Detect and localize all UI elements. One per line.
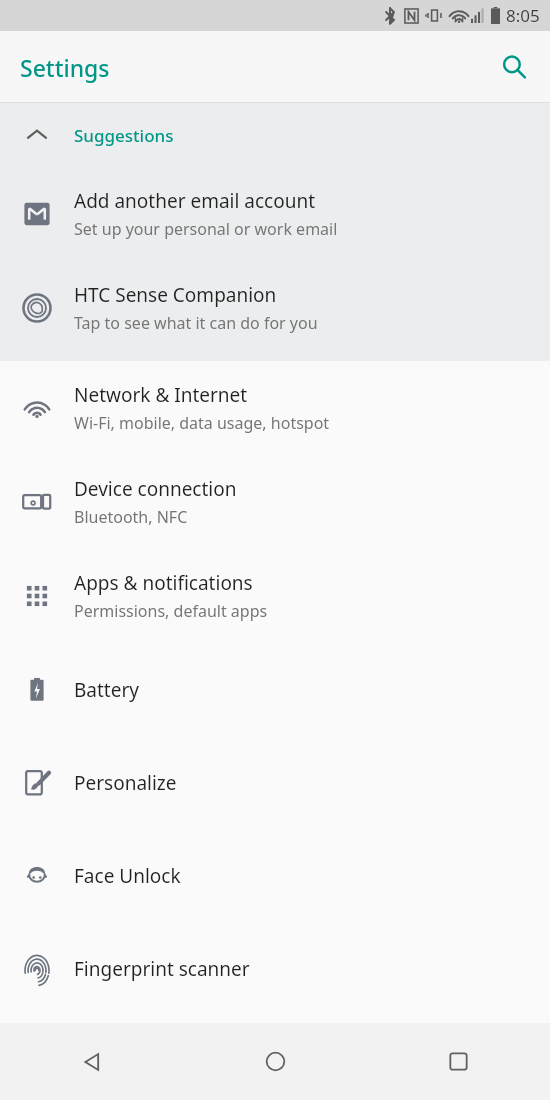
staticText: Apps & notifications [74,570,253,596]
staticText: Battery [74,677,139,703]
staticText: Network & Internet [74,382,248,408]
button[interactable]: Suggestions [0,103,550,167]
button[interactable]: Network & Internet [0,361,550,455]
staticText: Settings [20,52,110,83]
staticText: Personalize [74,770,177,796]
button[interactable]: Add another email account [0,167,550,261]
staticText: Device connection [74,476,237,502]
staticText: 8:05 [506,4,540,27]
button[interactable]: Face Unlock [0,829,550,922]
staticText: HTC Sense Companion [74,282,277,308]
button[interactable]: Home [184,1023,367,1100]
staticText: Bluetooth, NFC [74,506,188,528]
button[interactable]: HTC Sense Companion [0,261,550,355]
button[interactable]: Apps & notifications [0,549,550,643]
staticText: Face Unlock [74,863,181,889]
staticText: Permissions, default apps [74,600,268,622]
button[interactable]: Back [0,1023,184,1100]
button[interactable]: Personalize [0,736,550,829]
button[interactable]: Recent apps [367,1023,550,1100]
staticText: Tap to see what it can do for you [74,312,318,334]
button[interactable]: Battery [0,643,550,736]
button[interactable]: Fingerprint scanner [0,922,550,1015]
staticText: Set up your personal or work email [74,218,338,240]
button[interactable]: Device connection [0,455,550,549]
staticText: Suggestions [74,124,174,147]
staticText: Add another email account [74,188,316,214]
staticText: Fingerprint scanner [74,956,250,982]
staticText: Wi-Fi, mobile, data usage, hotspot [74,412,330,434]
button[interactable]: Search [492,45,536,89]
